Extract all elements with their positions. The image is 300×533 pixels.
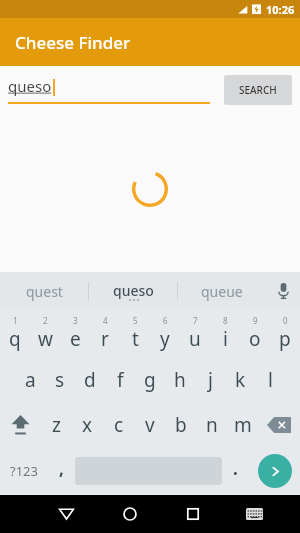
button[interactable]: d <box>75 357 105 402</box>
staticText: t <box>132 326 139 352</box>
button[interactable]: 5 <box>120 310 150 357</box>
staticText: h <box>174 367 186 393</box>
staticText: 3 <box>73 315 78 326</box>
button[interactable]: Shift <box>0 402 41 447</box>
staticText: g <box>144 367 156 393</box>
staticText: y <box>160 326 170 352</box>
button[interactable]: 4 <box>90 310 120 357</box>
staticText: 2 <box>43 315 48 326</box>
button[interactable]: Backspace <box>258 402 300 447</box>
button[interactable]: Voice input <box>266 272 300 310</box>
staticText: l <box>268 367 273 393</box>
button[interactable]: z <box>41 402 72 447</box>
staticText: w <box>38 326 53 352</box>
staticText: j <box>208 367 213 393</box>
staticText: queso <box>113 281 154 300</box>
button[interactable]: SEARCH <box>224 75 292 105</box>
staticText: 0 <box>283 315 288 326</box>
button[interactable]: . <box>222 447 249 495</box>
button[interactable]: b <box>165 402 196 447</box>
button[interactable]: 1 <box>0 310 30 357</box>
staticText: r <box>101 326 109 352</box>
staticText: 5 <box>133 315 138 326</box>
button[interactable]: h <box>165 357 195 402</box>
button[interactable]: Switch keyboard <box>224 495 284 533</box>
staticText: u <box>189 326 201 352</box>
staticText: quest <box>26 282 63 301</box>
staticText: e <box>70 326 81 352</box>
button[interactable]: , <box>48 447 75 495</box>
staticText: f <box>117 367 124 393</box>
button[interactable]: k <box>225 357 255 402</box>
staticText: 10:26 <box>266 2 295 17</box>
button[interactable]: v <box>134 402 165 447</box>
button[interactable]: x <box>72 402 103 447</box>
staticText: 1 <box>13 315 18 326</box>
button[interactable]: 8 <box>210 310 240 357</box>
button[interactable]: 2 <box>30 310 60 357</box>
staticText: k <box>235 367 246 393</box>
button[interactable]: 3 <box>60 310 90 357</box>
button[interactable]: 6 <box>150 310 180 357</box>
button[interactable]: a <box>15 357 45 402</box>
button[interactable]: Home <box>98 495 161 533</box>
button[interactable]: 0 <box>270 310 300 357</box>
button[interactable]: s <box>45 357 75 402</box>
button[interactable]: n <box>196 402 227 447</box>
button[interactable]: quest <box>0 272 88 310</box>
staticText: s <box>55 367 65 393</box>
button[interactable]: c <box>103 402 134 447</box>
button[interactable]: m <box>227 402 258 447</box>
button[interactable]: ?123 <box>0 447 48 495</box>
staticText: n <box>206 412 218 438</box>
staticText: 7 <box>193 315 198 326</box>
button[interactable]: Recent apps <box>161 495 224 533</box>
button[interactable]: j <box>195 357 225 402</box>
staticText: a <box>25 367 36 393</box>
button[interactable]: 7 <box>180 310 210 357</box>
staticText: b <box>175 412 187 438</box>
staticText: Cheese Finder <box>15 31 131 54</box>
button[interactable]: queso <box>8 76 210 104</box>
staticText: x <box>82 412 93 438</box>
staticText: p <box>279 326 291 352</box>
staticText: 4 <box>103 315 108 326</box>
button[interactable]: f <box>105 357 135 402</box>
button[interactable]: queso <box>89 272 177 310</box>
button[interactable]: g <box>135 357 165 402</box>
staticText: m <box>234 412 252 438</box>
staticText: queue <box>201 282 243 301</box>
button[interactable]: Search <box>249 447 300 495</box>
staticText: v <box>145 412 155 438</box>
staticText: z <box>52 412 61 438</box>
staticText: 9 <box>253 315 258 326</box>
staticText: SEARCH <box>239 83 277 97</box>
button[interactable]: l <box>255 357 285 402</box>
staticText: c <box>114 412 124 438</box>
button[interactable]: queue <box>178 272 266 310</box>
staticText: queso <box>8 76 52 96</box>
button[interactable]: Hide keyboard <box>35 495 98 533</box>
staticText: 8 <box>223 315 228 326</box>
staticText: ?123 <box>10 462 38 480</box>
button[interactable]: 9 <box>240 310 270 357</box>
staticText: d <box>84 367 96 393</box>
staticText: . <box>233 457 238 480</box>
staticText: , <box>59 457 64 480</box>
staticText: 6 <box>163 315 168 326</box>
staticText: q <box>9 326 21 352</box>
staticText: o <box>249 326 261 352</box>
staticText: i <box>223 326 228 352</box>
